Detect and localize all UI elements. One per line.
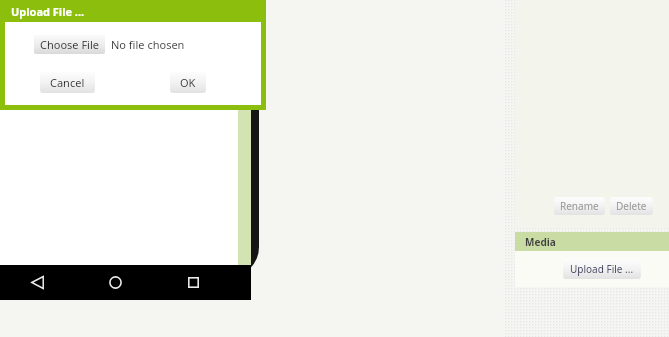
button[interactable]: OK — [170, 72, 206, 93]
button[interactable]: Home — [93, 265, 138, 300]
button[interactable]: Recent apps — [171, 265, 216, 300]
button[interactable]: Delete — [610, 197, 653, 215]
staticText: Upload File ... — [11, 4, 85, 19]
staticText: Rename — [560, 199, 599, 213]
button[interactable]: Back — [15, 265, 60, 300]
staticText: OK — [180, 75, 196, 90]
button[interactable]: Rename — [554, 197, 605, 215]
button[interactable]: Upload File ... — [563, 259, 641, 279]
staticText: Upload File ... — [570, 262, 634, 276]
staticText: Choose File — [40, 37, 99, 52]
button[interactable]: Cancel — [40, 72, 95, 93]
staticText: No file chosen — [111, 37, 185, 52]
staticText: Delete — [616, 199, 647, 213]
staticText: Media — [525, 235, 556, 249]
button[interactable]: Choose File — [34, 35, 105, 54]
staticText: Cancel — [50, 75, 85, 90]
